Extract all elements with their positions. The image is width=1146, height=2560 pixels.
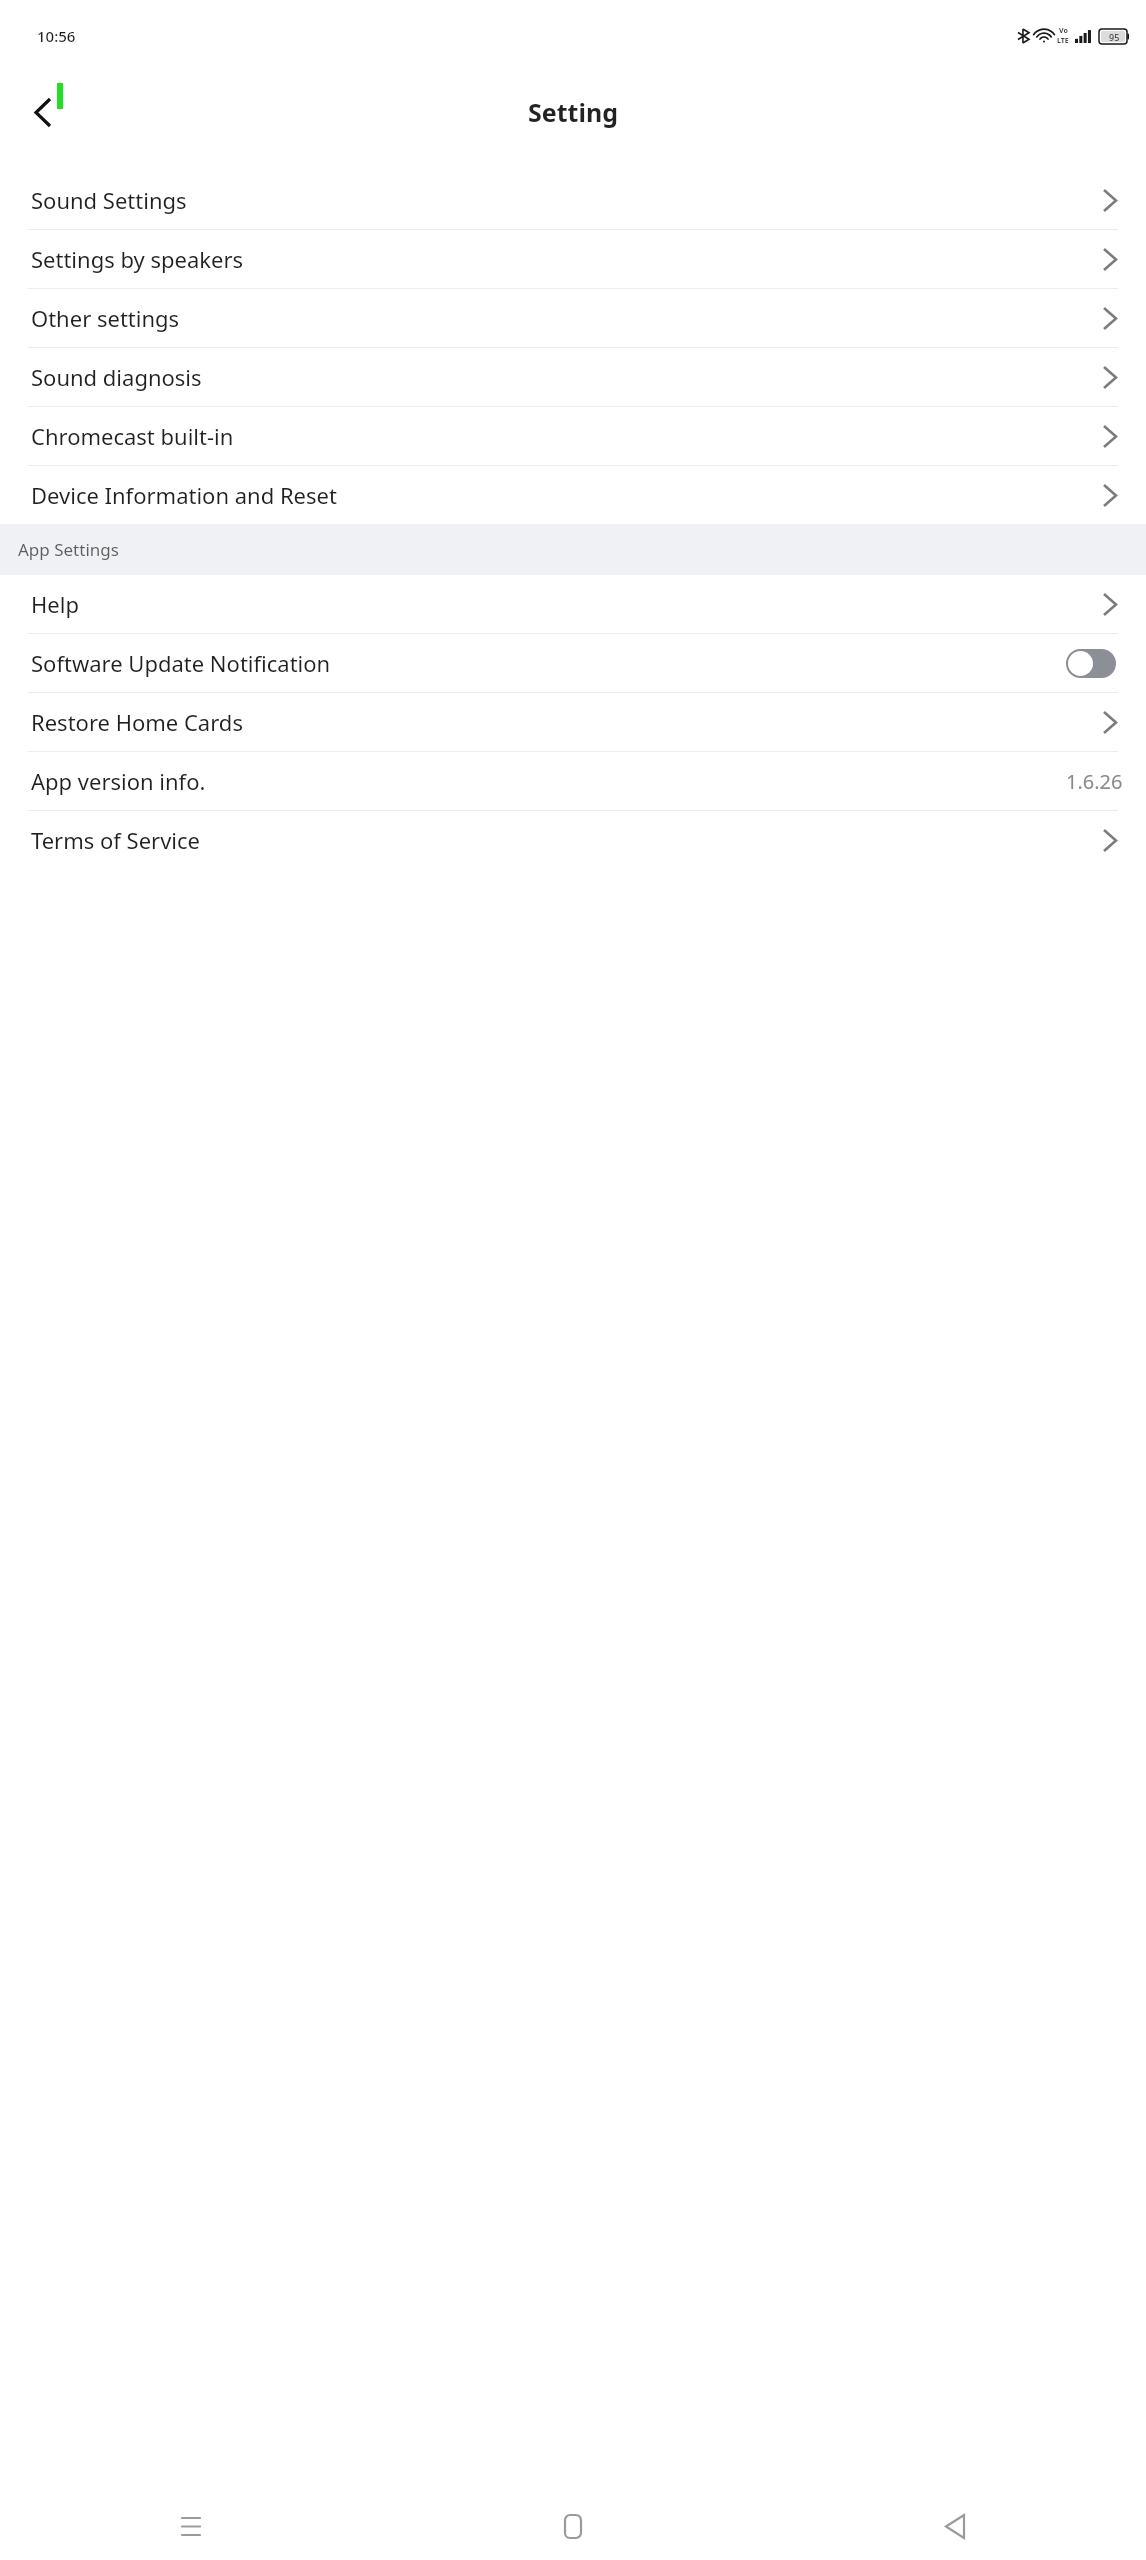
button[interactable]: Help <box>0 575 1146 633</box>
button[interactable]: Recents <box>0 2492 382 2560</box>
staticText: Sound Settings <box>31 185 187 215</box>
staticText: 1.6.26 <box>1066 768 1123 795</box>
button[interactable]: Sound Settings <box>0 171 1146 229</box>
staticText: 10:56 <box>37 26 76 46</box>
staticText: Software Update Notification <box>31 648 331 678</box>
staticText: Help <box>31 589 79 619</box>
staticText: Setting <box>528 95 618 129</box>
button[interactable]: Terms of Service <box>0 811 1146 869</box>
staticText: App version info. <box>31 766 206 796</box>
button[interactable]: App version info. <box>0 752 1146 810</box>
button[interactable]: Settings by speakers <box>0 230 1146 288</box>
button[interactable]: Software Update Notification <box>0 634 1146 692</box>
staticText: Sound diagnosis <box>31 362 202 392</box>
button[interactable]: Restore Home Cards <box>0 693 1146 751</box>
staticText: Chromecast built-in <box>31 421 234 451</box>
staticText: Terms of Service <box>31 825 201 855</box>
button[interactable]: Sound diagnosis <box>0 348 1146 406</box>
button[interactable]: Home <box>382 2492 764 2560</box>
button[interactable]: Device Information and Reset <box>0 466 1146 524</box>
staticText: LTE <box>1057 36 1069 46</box>
button[interactable]: Other settings <box>0 289 1146 347</box>
staticText: App Settings <box>18 538 119 561</box>
button[interactable]: Chromecast built-in <box>0 407 1146 465</box>
staticText: Restore Home Cards <box>31 707 243 737</box>
staticText: Vo <box>1059 26 1068 36</box>
button[interactable]: Back <box>14 83 72 141</box>
staticText: 95 <box>1109 31 1120 43</box>
staticText: Other settings <box>31 303 180 333</box>
staticText: Device Information and Reset <box>31 480 337 510</box>
button[interactable]: Back <box>764 2492 1146 2560</box>
staticText: Settings by speakers <box>31 244 244 274</box>
